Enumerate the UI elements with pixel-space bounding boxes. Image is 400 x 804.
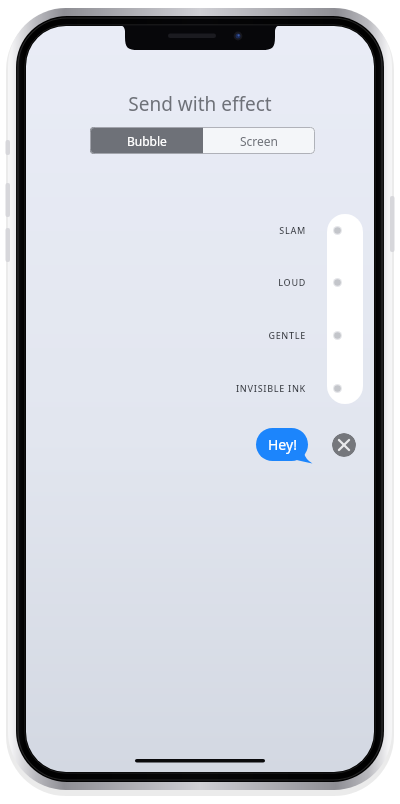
button[interactable]: Screen bbox=[203, 127, 315, 154]
staticText: LOUD bbox=[278, 276, 306, 288]
button[interactable]: INVISIBLE INK bbox=[200, 375, 364, 401]
button[interactable]: SLAM bbox=[200, 217, 364, 243]
staticText: Hey! bbox=[268, 435, 297, 454]
staticText: GENTLE bbox=[268, 329, 306, 341]
button[interactable]: Bubble bbox=[90, 127, 203, 154]
button[interactable]: Close bbox=[332, 433, 356, 457]
button[interactable]: Hey! bbox=[256, 428, 308, 461]
button[interactable]: LOUD bbox=[200, 269, 364, 295]
staticText: Send with effect bbox=[128, 91, 272, 115]
button[interactable]: GENTLE bbox=[200, 322, 364, 348]
staticText: SLAM bbox=[279, 224, 306, 236]
staticText: INVISIBLE INK bbox=[235, 382, 306, 394]
staticText: Bubble bbox=[127, 133, 167, 149]
staticText: Screen bbox=[240, 133, 279, 149]
